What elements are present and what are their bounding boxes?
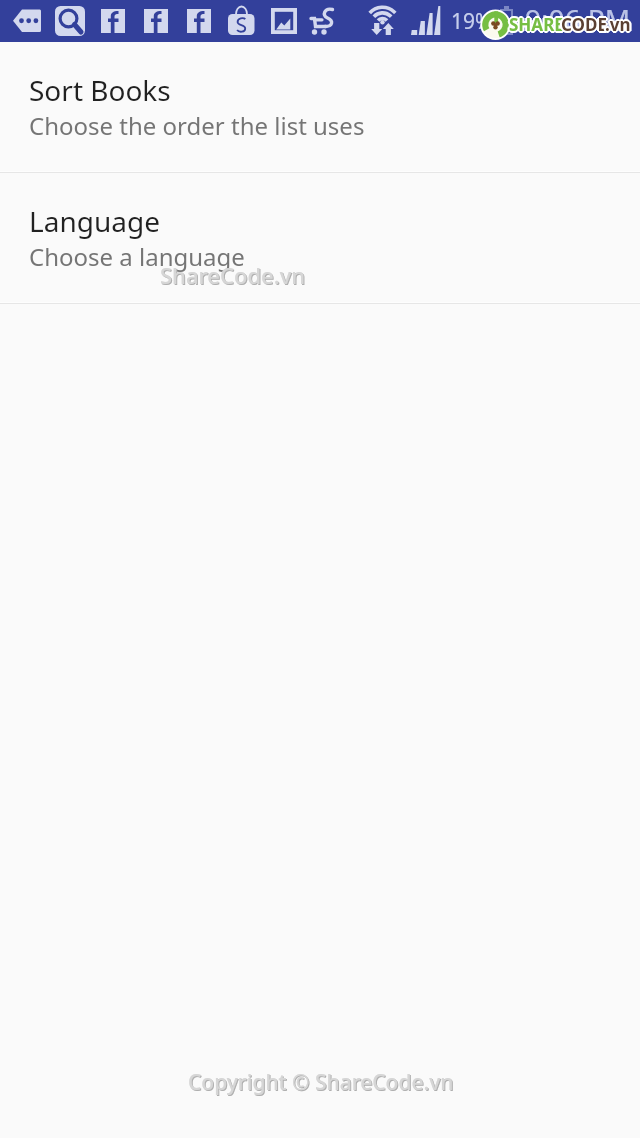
other: Status bar bbox=[0, 0, 640, 42]
staticText: SHARE bbox=[510, 12, 565, 35]
staticText: .vn bbox=[604, 13, 630, 36]
staticText: Choose a language bbox=[29, 240, 245, 273]
staticText: SHARE bbox=[508, 14, 563, 37]
staticText: 19% bbox=[451, 7, 493, 36]
staticText: CODE bbox=[561, 15, 607, 38]
staticText: SHARE bbox=[509, 11, 564, 34]
staticText: SHARE bbox=[508, 12, 563, 35]
staticText: CODE bbox=[560, 13, 606, 36]
staticText: .vn bbox=[605, 12, 631, 35]
staticText: .vn bbox=[607, 13, 633, 36]
staticText: .vn bbox=[605, 15, 631, 38]
staticText: SHARE bbox=[509, 13, 564, 36]
button[interactable]: Sort Books bbox=[0, 42, 640, 172]
staticText: SHARE bbox=[511, 13, 566, 36]
staticText: SHARE bbox=[508, 13, 563, 36]
staticText: Copyright © ShareCode.vn bbox=[189, 1069, 455, 1098]
staticText: CODE bbox=[562, 13, 608, 36]
staticText: CODE bbox=[561, 12, 607, 35]
staticText: 9:06 PM bbox=[525, 0, 631, 38]
staticText: CODE bbox=[562, 14, 608, 37]
staticText: Language bbox=[29, 202, 160, 240]
staticText: ShareCode.vn bbox=[160, 260, 306, 290]
staticText: Copyright © ShareCode.vn bbox=[188, 1068, 454, 1097]
staticText: .vn bbox=[605, 13, 631, 36]
staticText: SHARE bbox=[509, 12, 564, 35]
staticText: .vn bbox=[605, 14, 631, 37]
staticText: .vn bbox=[606, 14, 632, 37]
staticText: CODE bbox=[561, 14, 607, 37]
staticText: SHARE bbox=[507, 13, 562, 36]
staticText: SHARE bbox=[510, 13, 565, 36]
staticText: .vn bbox=[606, 13, 632, 36]
button[interactable]: Language bbox=[0, 173, 640, 303]
staticText: SHARE bbox=[509, 15, 564, 38]
staticText: CODE bbox=[560, 14, 606, 37]
staticText: CODE bbox=[561, 13, 607, 36]
staticText: .vn bbox=[604, 14, 630, 37]
staticText: CODE bbox=[560, 12, 606, 35]
staticText: Sort Books bbox=[29, 71, 171, 109]
staticText: CODE bbox=[562, 12, 608, 35]
staticText: Choose the order the list uses bbox=[29, 109, 365, 142]
staticText: .vn bbox=[606, 12, 632, 35]
staticText: .vn bbox=[605, 11, 631, 34]
staticText: SHARE bbox=[509, 14, 564, 37]
staticText: ShareCode.vn bbox=[161, 261, 307, 291]
staticText: .vn bbox=[603, 13, 629, 36]
staticText: CODE bbox=[563, 13, 609, 36]
staticText: CODE bbox=[559, 13, 605, 36]
staticText: .vn bbox=[604, 12, 630, 35]
staticText: SHARE bbox=[510, 14, 565, 37]
staticText: CODE bbox=[561, 11, 607, 34]
